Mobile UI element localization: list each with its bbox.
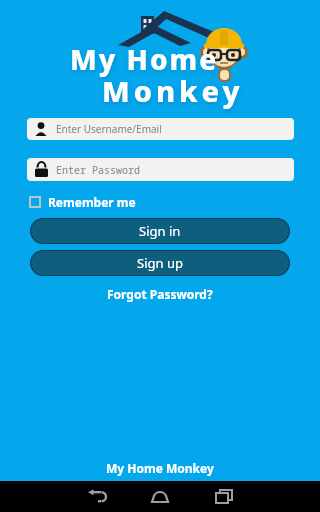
staticText: Enter Username/Email [56,122,162,136]
button[interactable] [216,490,232,503]
staticText: Remember me [48,194,136,210]
button[interactable]: Forgot Password? [107,286,213,302]
button[interactable]: Remember me [29,194,136,210]
button[interactable]: Enter Username/Email [27,118,294,140]
staticText: Sign in [139,222,181,240]
button[interactable]: Sign up [30,250,290,276]
button[interactable]: Sign in [30,218,290,244]
button[interactable] [151,490,169,503]
staticText: Monkey [102,71,244,110]
button[interactable] [88,490,107,503]
staticText: Enter Password [56,163,140,177]
staticText: My Home [70,40,219,78]
staticText: My Home Monkey [106,460,214,476]
staticText: Sign up [137,254,183,272]
button[interactable]: Enter Password [27,158,294,181]
